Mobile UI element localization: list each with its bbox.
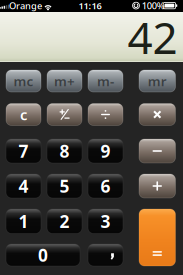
button[interactable]: 4	[6, 174, 41, 198]
staticText: 9	[100, 139, 110, 162]
button[interactable]: Plus	[139, 174, 175, 198]
staticText: 11:16	[78, 0, 101, 12]
staticText: 2	[59, 210, 69, 233]
staticText: Orange	[9, 0, 42, 12]
button[interactable]: 3	[88, 209, 123, 233]
button[interactable]: m-	[88, 70, 123, 92]
button[interactable]: 0	[6, 244, 80, 266]
staticText: mc	[13, 72, 33, 90]
button[interactable]: Plus minus	[47, 103, 82, 125]
button[interactable]: Decimal separator	[88, 244, 123, 266]
staticText: m-	[97, 72, 114, 90]
staticText: 7	[18, 139, 28, 162]
button[interactable]: Multiply	[139, 103, 175, 125]
staticText: m+	[54, 72, 75, 90]
staticText: 0	[38, 243, 48, 266]
staticText: 5	[59, 174, 69, 197]
button[interactable]: 7	[6, 139, 41, 163]
button[interactable]: 2	[47, 209, 82, 233]
staticText: 3	[100, 210, 110, 233]
staticText: 8	[59, 139, 69, 162]
staticText: 6	[100, 174, 110, 197]
button[interactable]: m+	[47, 70, 82, 92]
button[interactable]: mc	[6, 70, 41, 92]
button[interactable]: Divide	[88, 103, 123, 125]
button[interactable]: Minus	[139, 139, 175, 163]
button[interactable]: 1	[6, 209, 41, 233]
staticText: 100%	[142, 0, 165, 12]
button[interactable]: 6	[88, 174, 123, 198]
staticText: 1	[18, 210, 28, 233]
staticText: 42	[127, 8, 177, 66]
button[interactable]: c	[6, 103, 41, 125]
button[interactable]: mr	[139, 70, 175, 92]
staticText: c	[20, 105, 27, 124]
button[interactable]: 5	[47, 174, 82, 198]
button[interactable]: 8	[47, 139, 82, 163]
staticText: 4	[18, 174, 28, 197]
staticText: mr	[148, 72, 167, 90]
button[interactable]: 9	[88, 139, 123, 163]
button[interactable]: Equals	[139, 209, 175, 266]
